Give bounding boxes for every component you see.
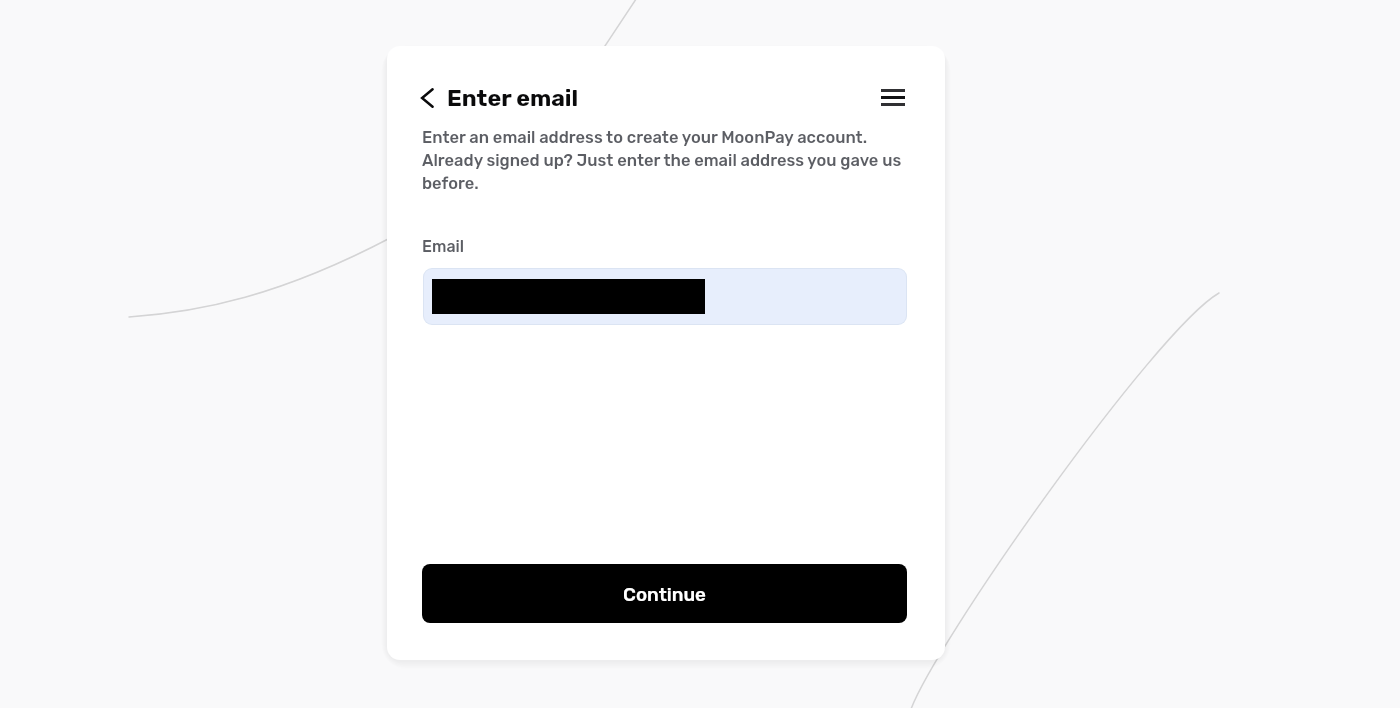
- button[interactable]: Menu: [875, 82, 910, 113]
- staticText: Enter an email address to create your Mo…: [422, 128, 910, 193]
- staticText: Continue: [623, 583, 706, 605]
- button[interactable]: Back: [414, 82, 440, 113]
- button[interactable]: Continue: [422, 564, 907, 623]
- button[interactable]: [424, 269, 906, 324]
- staticText: Email: [422, 237, 464, 256]
- staticText: Enter email: [447, 84, 579, 111]
